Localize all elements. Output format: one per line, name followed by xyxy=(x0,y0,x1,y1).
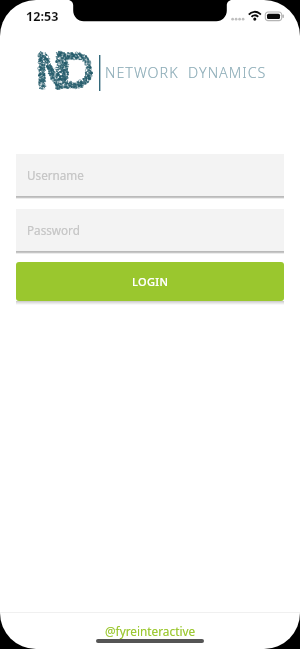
button[interactable]: LOGIN xyxy=(16,262,284,301)
button[interactable]: Password xyxy=(16,209,284,254)
staticText: 12:53 xyxy=(26,8,59,25)
staticText: Password xyxy=(27,222,80,238)
staticText: NETWORK DYNAMICS xyxy=(105,63,267,82)
button[interactable]: Username xyxy=(16,154,284,199)
staticText: LOGIN xyxy=(132,274,169,289)
button[interactable]: @fyreinteractive xyxy=(105,623,196,639)
staticText: Username xyxy=(27,167,84,183)
